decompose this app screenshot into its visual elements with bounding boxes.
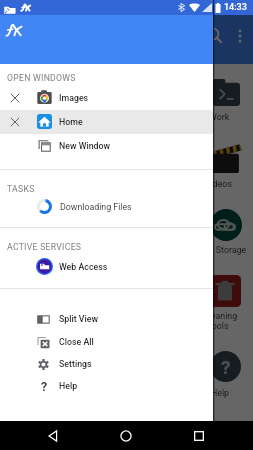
staticText: Cloud Storage [191,245,247,255]
staticText: Settings [59,359,92,369]
staticText: Work [209,112,230,122]
staticText: Downloading Files [60,202,132,212]
button[interactable] [211,142,242,173]
button[interactable]: Home [117,427,135,445]
button[interactable]: More options [228,24,252,48]
staticText: Tools [207,321,229,331]
button[interactable]: Close Home [0,110,213,134]
staticText: ? [221,356,231,378]
button[interactable]: Back [44,427,62,445]
button[interactable]: New Window [0,134,213,158]
staticText: Videos [205,179,232,189]
button[interactable]: Search [203,24,227,48]
button[interactable] [209,275,241,307]
button[interactable]: Recents [190,427,208,445]
staticText: Split View [59,314,99,324]
button[interactable]: Settings [0,353,213,375]
staticText: Home [59,117,83,127]
button[interactable]: Close Images [0,86,213,110]
staticText: TASKS [7,184,35,194]
button[interactable]: ? [0,375,213,397]
staticText: Help [211,388,230,398]
staticText: New Window [59,141,111,151]
button[interactable]: Split View [0,308,213,330]
staticText: OPEN WINDOWS [7,73,76,83]
staticText: Images [59,93,89,103]
button[interactable]: Close Images [7,90,23,106]
staticText: ACTIVE SERVICES [7,242,82,252]
staticText: Help [59,381,78,391]
button[interactable] [213,79,240,106]
button[interactable]: Downloading Files [0,196,213,217]
staticText: Close All [59,337,94,347]
staticText: 14:33 [224,2,247,13]
staticText: Web Access [59,262,108,272]
button[interactable]: Close Home [7,114,23,130]
button[interactable]: Close All [0,331,213,353]
staticText: Cleaning [203,311,238,321]
button[interactable] [210,209,242,241]
button[interactable]: Web Access [0,256,213,277]
staticText: ? [41,379,48,394]
button[interactable]: ? [210,351,241,382]
